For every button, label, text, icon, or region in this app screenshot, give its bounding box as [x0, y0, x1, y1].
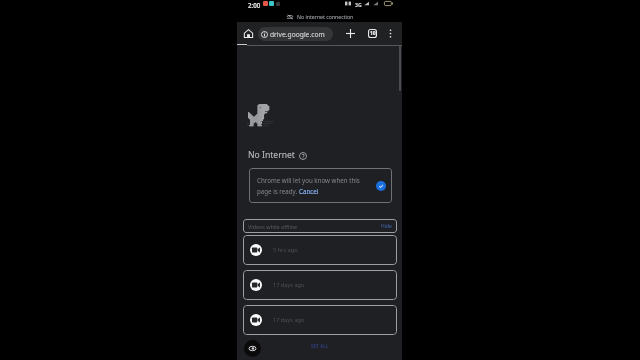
staticText: No Internet: [248, 149, 295, 161]
staticText: page is ready.: [257, 187, 299, 195]
button[interactable]: More options: [383, 26, 397, 40]
staticText: drive.google.com: [270, 30, 325, 39]
button[interactable]: Home: [241, 26, 255, 40]
button[interactable]: 17 days ago: [243, 270, 397, 300]
staticText: Cancel: [299, 187, 319, 195]
staticText: 17 days ago: [273, 281, 305, 289]
button[interactable]: 5 hrs ago: [243, 235, 397, 265]
staticText: 17 days ago: [273, 316, 305, 324]
staticText: 5 hrs ago: [273, 246, 298, 254]
staticText: SEE ALL: [311, 343, 329, 349]
button[interactable]: drive.google.com: [258, 27, 333, 41]
button[interactable]: SEE ALL: [306, 340, 334, 352]
staticText: Videos while offline: [248, 223, 298, 230]
staticText: No internet connection: [297, 13, 354, 20]
button[interactable]: Videos while offline: [243, 219, 397, 233]
button[interactable]: 17 days ago: [243, 305, 397, 335]
button[interactable]: Help: [298, 151, 307, 160]
button[interactable]: New tab: [343, 26, 357, 40]
button[interactable]: Downloads: [244, 340, 261, 357]
staticText: 2:00: [248, 1, 261, 9]
button[interactable]: Chrome will let you know when this: [249, 168, 392, 203]
staticText: Chrome will let you know when this: [257, 176, 360, 184]
button[interactable]: Tab switcher, 10 tabs: [365, 26, 379, 40]
staticText: 3G: [355, 1, 362, 8]
staticText: Hide: [381, 223, 392, 230]
staticText: 10: [370, 30, 376, 37]
